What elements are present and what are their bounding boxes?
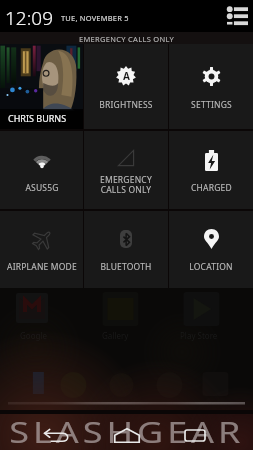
staticText: AIRPLANE MODE — [7, 261, 77, 273]
button[interactable]: BLUETOOTH — [84, 211, 168, 288]
staticText: BLUETOOTH — [100, 261, 152, 273]
button[interactable]: Quick settings — [225, 4, 249, 28]
staticText: ASUS5G — [25, 182, 59, 194]
staticText: 12:09 — [5, 5, 54, 31]
button[interactable]: LOCATION — [169, 211, 253, 288]
staticText: Gallery — [102, 330, 129, 341]
button[interactable]: Home — [114, 422, 140, 448]
staticText: EMERGENCY CALLS ONLY — [79, 34, 175, 44]
staticText: EMERGENCY CALLS ONLY — [100, 174, 152, 196]
staticText: BRIGHTNESS — [99, 99, 153, 111]
staticText: CHARGED — [191, 182, 232, 194]
button[interactable]: CHARGED — [169, 131, 253, 209]
staticText: Google — [20, 330, 47, 341]
staticText: LOCATION — [189, 261, 233, 273]
button[interactable]: A — [84, 44, 168, 129]
button[interactable]: CHRIS BURNS — [0, 44, 83, 129]
button[interactable]: EMERGENCY CALLS ONLY — [84, 131, 168, 209]
staticText: Play Store — [180, 330, 218, 341]
staticText: TUE, NOVEMBER 5 — [61, 13, 129, 23]
button[interactable]: Back — [44, 422, 70, 448]
staticText: A — [123, 69, 130, 83]
staticText: SETTINGS — [191, 99, 232, 111]
staticText: CHRIS BURNS — [8, 112, 67, 124]
button[interactable]: Recents — [182, 422, 208, 448]
button[interactable]: ASUS5G — [0, 131, 83, 209]
button[interactable]: AIRPLANE MODE — [0, 211, 83, 288]
button[interactable]: SETTINGS — [169, 44, 253, 129]
staticText: SLASHGEAR — [9, 412, 245, 450]
